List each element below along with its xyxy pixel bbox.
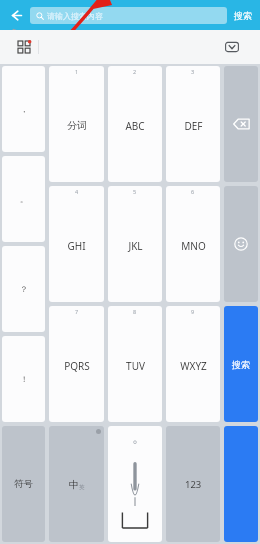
staticText: 请输入搜索内容 [47, 11, 103, 21]
button[interactable]: Back [4, 3, 28, 27]
staticText: ！ [20, 374, 28, 384]
button[interactable]: 9 [166, 306, 220, 422]
button[interactable]: 1 [49, 66, 104, 182]
button[interactable]: Keyboard tools [12, 35, 36, 59]
button[interactable]: 5 [108, 186, 162, 302]
staticText: 7 [75, 308, 79, 315]
button[interactable]: 7 [49, 306, 104, 422]
staticText: 英 [79, 484, 85, 491]
button[interactable]: 搜索 [224, 306, 258, 422]
staticText: 8 [133, 308, 137, 315]
button[interactable]: Backspace [224, 66, 258, 182]
button[interactable]: 2 [108, 66, 162, 182]
staticText: GHI [67, 239, 86, 253]
staticText: 123 [185, 478, 202, 491]
button[interactable]: 123 [166, 426, 220, 542]
button[interactable]: 符号 [2, 426, 45, 542]
staticText: 中 [69, 478, 79, 491]
staticText: TUV [126, 359, 145, 373]
staticText: 。 [20, 194, 28, 204]
button[interactable]: 3 [166, 66, 220, 182]
staticText: 搜索 [234, 10, 252, 21]
staticText: JKL [128, 239, 143, 253]
button[interactable]: 搜索 [232, 5, 254, 26]
staticText: PQRS [64, 359, 90, 373]
button[interactable]: Emoji [224, 186, 258, 302]
staticText: ， [20, 104, 28, 114]
staticText: 符号 [14, 478, 33, 490]
staticText: 1 [75, 68, 79, 75]
staticText: 分词 [67, 119, 87, 132]
button[interactable]: Search [224, 426, 258, 542]
staticText: 4 [75, 188, 79, 195]
button[interactable]: 6 [166, 186, 220, 302]
staticText: 搜索 [232, 359, 250, 370]
staticText: DEF [184, 119, 203, 133]
button[interactable]: ！ [2, 336, 45, 422]
staticText: MNO [181, 239, 206, 253]
button[interactable]: Space [108, 426, 162, 542]
staticText: 9 [191, 308, 195, 315]
button[interactable]: 4 [49, 186, 104, 302]
staticText: WXYZ [180, 359, 207, 373]
button[interactable]: Hide keyboard [220, 35, 244, 59]
button[interactable]: 中 [49, 426, 104, 542]
button[interactable]: 请输入搜索内容 [30, 7, 227, 24]
staticText: ABC [125, 119, 145, 133]
staticText: 6 [191, 188, 195, 195]
staticText: 3 [191, 68, 195, 75]
staticText: 2 [133, 68, 137, 75]
staticText: ？ [20, 284, 28, 294]
button[interactable]: 8 [108, 306, 162, 422]
button[interactable]: ？ [2, 246, 45, 332]
staticText: 5 [133, 188, 137, 195]
